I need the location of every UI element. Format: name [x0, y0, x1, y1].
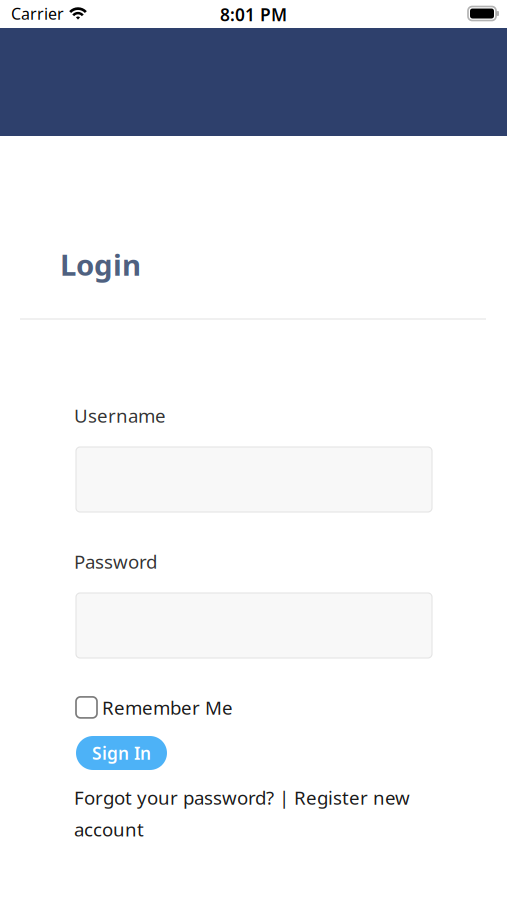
- staticText: Password: [74, 549, 157, 565]
- staticText: 8:01 PM: [220, 3, 287, 19]
- button[interactable]: Remember Me: [76, 695, 326, 716]
- staticText: Remember Me: [102, 695, 233, 720]
- staticText: Sign In: [92, 741, 151, 764]
- staticText: Carrier: [11, 3, 64, 19]
- staticText: Username: [74, 403, 166, 419]
- staticText: Forgot your password? | Register new acc…: [74, 785, 410, 842]
- button[interactable]: Forgot your password? | Register new acc…: [74, 785, 419, 851]
- button[interactable]: Sign In: [76, 736, 167, 770]
- staticText: Login: [60, 245, 141, 275]
